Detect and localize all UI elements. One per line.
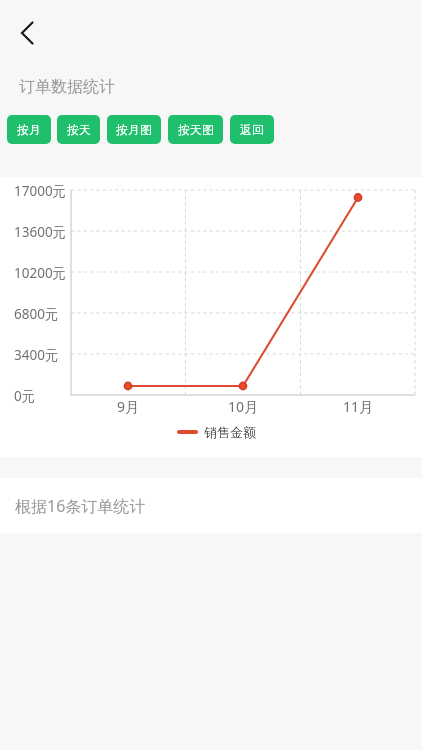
staticText: 返回	[240, 122, 264, 137]
staticText: 销售金额	[204, 424, 256, 440]
staticText: 10200元	[14, 264, 67, 282]
staticText: 17000元	[14, 182, 67, 200]
staticText: 6800元	[14, 305, 59, 323]
staticText: 13600元	[14, 223, 67, 241]
button[interactable]: 返回	[230, 115, 274, 144]
staticText: 3400元	[14, 346, 59, 364]
staticText: 按月	[17, 122, 41, 137]
staticText: 按天	[67, 122, 91, 137]
button[interactable]: 按天图	[168, 115, 223, 144]
staticText: 9月	[117, 397, 140, 416]
button[interactable]: Back	[7, 13, 47, 53]
staticText: 按天图	[178, 122, 214, 137]
staticText: 按月图	[116, 122, 152, 137]
staticText: 0元	[14, 387, 36, 405]
staticText: 10月	[228, 397, 259, 416]
button[interactable]: 按月	[7, 115, 51, 144]
button[interactable]: 按天	[57, 115, 100, 144]
staticText: 11月	[343, 397, 374, 416]
staticText: 根据16条订单统计	[15, 495, 146, 517]
button[interactable]: 按月图	[107, 115, 161, 144]
staticText: 订单数据统计	[19, 77, 115, 97]
